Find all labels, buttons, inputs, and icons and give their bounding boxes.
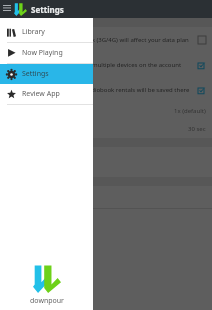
button[interactable]: Open navigation drawer: [0, 2, 14, 16]
staticText: downpour: [30, 296, 64, 306]
staticText: Settings: [22, 69, 49, 79]
button[interactable]: Close navigation drawer: [0, 18, 212, 310]
button[interactable]: Sync position even if you have multiple …: [0, 52, 212, 77]
button[interactable]: Choose where downloaded audiobook rental…: [0, 77, 212, 102]
staticText: Choose where downloaded audiobook rental…: [6, 86, 193, 94]
staticText: Streaming over mobile network (3G/4G) wi…: [6, 36, 193, 44]
staticText: 30 sec: [188, 125, 206, 133]
staticText: Review App: [22, 89, 60, 99]
staticText: Library: [22, 27, 45, 37]
staticText: Sync position even if you have multiple …: [6, 61, 193, 69]
button[interactable]: 30 sec: [0, 120, 212, 138]
button[interactable]: Now Playing: [0, 43, 93, 63]
button[interactable]: Streaming over mobile network (3G/4G) wi…: [0, 27, 212, 52]
button[interactable]: Settings: [0, 64, 93, 84]
staticText: Now Playing: [22, 48, 63, 58]
staticText: Settings: [31, 4, 64, 15]
staticText: 1x (default): [174, 107, 206, 115]
button[interactable]: Library: [0, 22, 93, 42]
button[interactable]: Review App: [0, 84, 93, 104]
button[interactable]: 1x (default): [0, 102, 212, 120]
